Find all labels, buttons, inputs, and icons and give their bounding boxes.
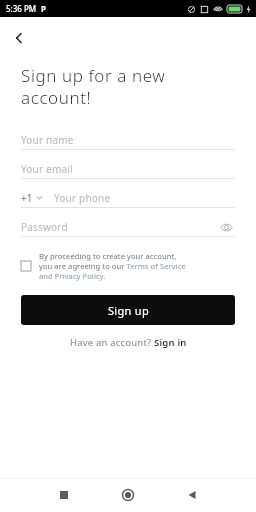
staticText: Sign up for a new account! (21, 64, 166, 109)
button[interactable]: Have an account? Sign in (0, 336, 256, 349)
staticText: Your name (21, 133, 74, 147)
staticText: P (41, 3, 46, 14)
staticText: Your phone (54, 191, 111, 205)
staticText: Have an account? Sign in (70, 336, 187, 349)
button[interactable]: Your name (21, 130, 235, 150)
staticText: By proceeding to create your account, yo… (39, 251, 186, 281)
button[interactable]: Recents (47, 478, 81, 512)
button[interactable]: By proceeding to create your account, yo… (21, 251, 240, 281)
staticText: +1 (21, 191, 33, 205)
staticText: Password (21, 220, 68, 234)
button[interactable]: Show password (217, 218, 235, 236)
button[interactable]: Sign up (21, 295, 235, 325)
staticText: Your email (21, 162, 73, 176)
staticText: Sign up (108, 303, 149, 318)
button[interactable]: Your email (21, 159, 235, 179)
button[interactable]: Back (175, 478, 209, 512)
button[interactable]: +1 (21, 188, 235, 208)
button[interactable]: Password (21, 217, 235, 237)
button[interactable]: Back (4, 23, 34, 53)
staticText: 5:36 PM (6, 3, 37, 14)
button[interactable]: Home (111, 478, 145, 512)
